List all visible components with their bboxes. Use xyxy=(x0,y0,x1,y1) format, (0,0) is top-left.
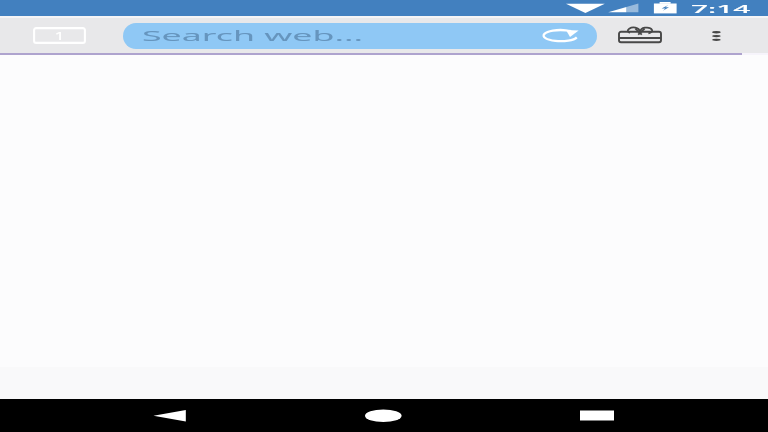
staticText: 1 xyxy=(55,29,65,43)
button[interactable]: Recent apps xyxy=(566,399,628,432)
button[interactable]: Back xyxy=(139,399,201,432)
button[interactable]: More options xyxy=(704,22,729,47)
button[interactable]: Tabs xyxy=(33,27,86,44)
staticText: Search web... xyxy=(142,26,364,45)
staticText: 7:14 xyxy=(691,1,751,16)
button[interactable]: Offers xyxy=(612,18,668,51)
button[interactable]: Home xyxy=(353,399,415,432)
button[interactable]: Search web... xyxy=(123,23,597,49)
